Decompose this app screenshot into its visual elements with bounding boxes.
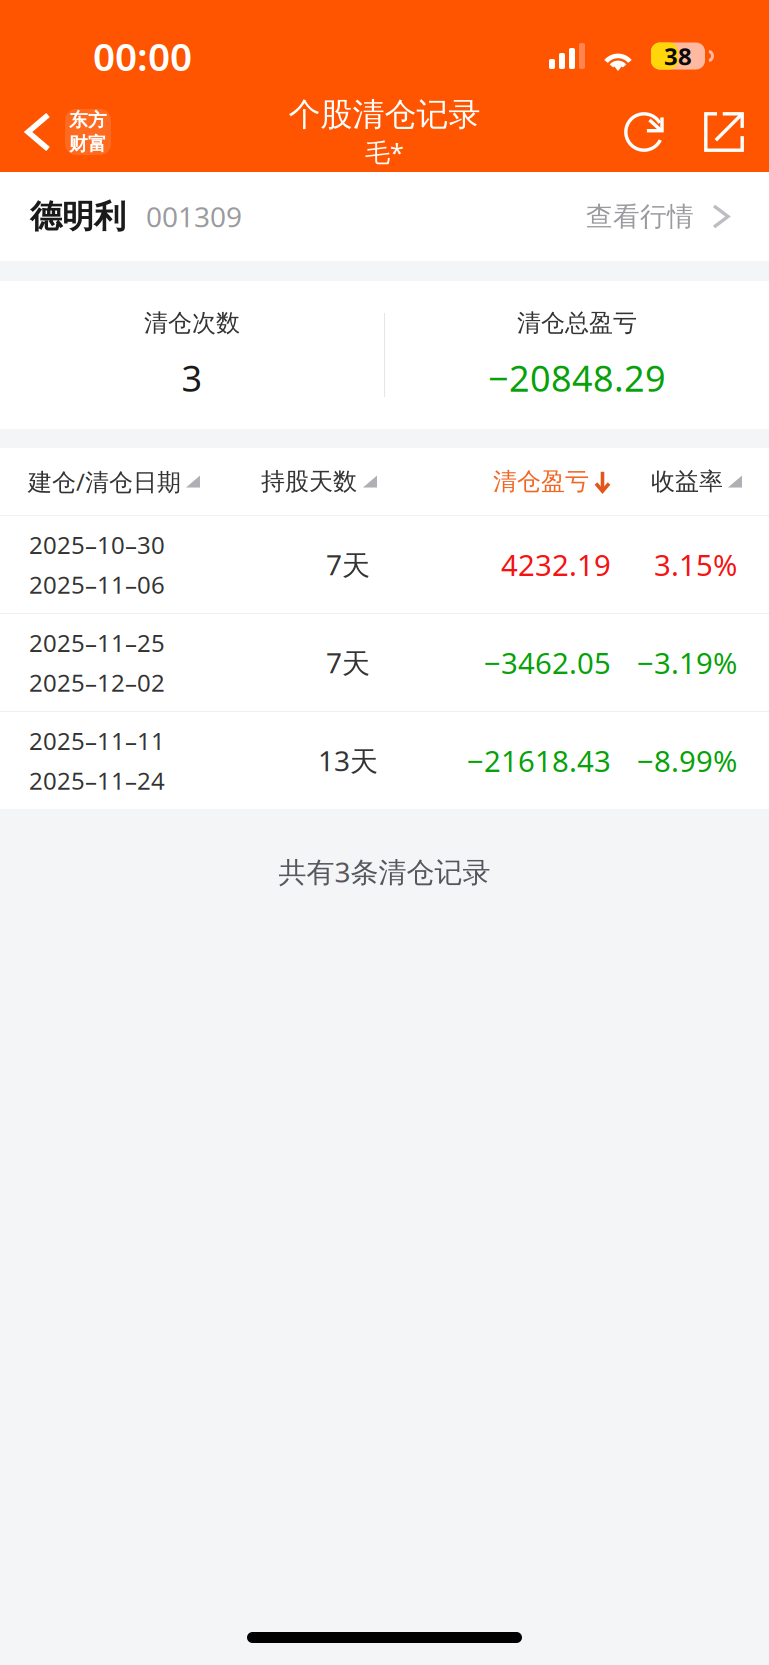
staticText: 查看行情 bbox=[586, 200, 694, 233]
button[interactable]: 建仓/清仓日期 bbox=[0, 448, 233, 515]
button[interactable]: Refresh bbox=[604, 92, 684, 172]
button[interactable]: 持股天数 bbox=[233, 448, 431, 515]
staticText: 建仓/清仓日期 bbox=[28, 466, 181, 497]
button[interactable]: Share bbox=[684, 92, 764, 172]
button[interactable]: 清仓盈亏 bbox=[431, 448, 611, 515]
staticText: 7天 bbox=[326, 644, 370, 681]
staticText: 2025–11–24 bbox=[29, 764, 165, 796]
staticText: 持股天数 bbox=[261, 467, 357, 496]
staticText: −20848.29 bbox=[488, 354, 666, 402]
staticText: −21618.43 bbox=[467, 741, 611, 780]
staticText: 00:00 bbox=[93, 30, 192, 82]
staticText: 2025–12–02 bbox=[29, 666, 165, 698]
staticText: 财富 bbox=[69, 132, 107, 155]
staticText: 共有3条清仓记录 bbox=[278, 853, 490, 890]
staticText: 7天 bbox=[326, 546, 370, 583]
staticText: 清仓次数 bbox=[144, 308, 240, 338]
button[interactable]: Back bbox=[0, 92, 127, 172]
staticText: 4232.19 bbox=[501, 545, 611, 584]
staticText: 2025–11–11 bbox=[29, 725, 165, 756]
staticText: 清仓盈亏 bbox=[493, 467, 589, 496]
staticText: 3 bbox=[181, 354, 202, 402]
staticText: −3462.05 bbox=[484, 643, 611, 682]
staticText: 收益率 bbox=[651, 467, 723, 496]
staticText: 13天 bbox=[318, 742, 378, 779]
staticText: 3.15% bbox=[654, 545, 737, 584]
button[interactable]: 德明利 bbox=[0, 172, 769, 261]
staticText: −3.19% bbox=[637, 643, 737, 682]
staticText: 2025–11–06 bbox=[29, 568, 165, 600]
staticText: 德明利 bbox=[30, 197, 126, 236]
button[interactable]: 收益率 bbox=[611, 448, 769, 515]
staticText: 东方 bbox=[69, 109, 107, 131]
staticText: 2025–10–30 bbox=[29, 529, 165, 560]
staticText: 2025–11–25 bbox=[29, 627, 165, 658]
staticText: 38 bbox=[664, 40, 692, 72]
staticText: 个股清仓记录 bbox=[288, 95, 480, 134]
staticText: 毛* bbox=[365, 135, 404, 169]
staticText: −8.99% bbox=[637, 741, 737, 780]
staticText: 001309 bbox=[146, 198, 242, 235]
staticText: 清仓总盈亏 bbox=[517, 308, 637, 338]
